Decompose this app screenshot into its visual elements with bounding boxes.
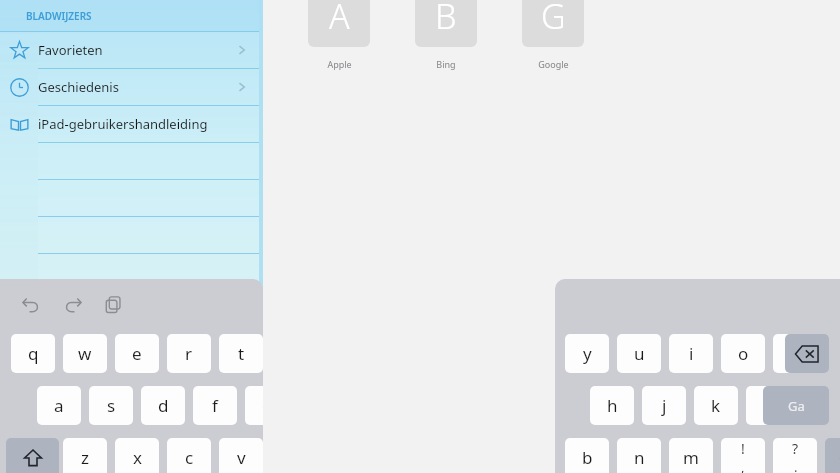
staticText: BLADWIJZERS: [26, 9, 92, 23]
staticText: j: [662, 394, 667, 417]
staticText: q: [28, 342, 39, 365]
button[interactable]: Favorieten: [0, 32, 263, 68]
button[interactable]: iPad-gebruikershandleiding: [0, 106, 263, 142]
staticText: b: [582, 446, 593, 469]
staticText: s: [107, 394, 116, 417]
staticText: z: [81, 446, 89, 469]
button[interactable]: t: [219, 334, 263, 373]
staticText: .: [794, 458, 798, 473]
button[interactable]: u: [617, 334, 661, 373]
staticText: w: [78, 342, 92, 365]
button[interactable]: g: [245, 386, 263, 425]
staticText: y: [583, 342, 592, 365]
staticText: r: [185, 342, 193, 365]
staticText: p: [790, 342, 801, 365]
button[interactable]: Geschiedenis: [0, 69, 263, 105]
staticText: k: [711, 394, 721, 417]
button[interactable]: b: [565, 438, 609, 473]
staticText: Favorieten: [38, 41, 103, 59]
staticText: a: [54, 394, 64, 417]
button[interactable]: j: [642, 386, 686, 425]
button[interactable]: Apple: [294, 56, 384, 72]
button[interactable]: p: [773, 334, 817, 373]
button[interactable]: l: [746, 386, 790, 425]
staticText: ,: [741, 458, 745, 473]
staticText: o: [738, 342, 749, 365]
staticText: u: [634, 342, 645, 365]
staticText: A: [329, 0, 350, 39]
button[interactable]: r: [167, 334, 211, 373]
staticText: d: [158, 394, 169, 417]
button[interactable]: Google: [508, 56, 598, 72]
button[interactable]: m: [669, 438, 713, 473]
button[interactable]: !: [721, 438, 765, 473]
staticText: n: [634, 446, 645, 469]
button[interactable]: c: [167, 438, 211, 473]
button[interactable]: d: [141, 386, 185, 425]
staticText: e: [132, 342, 142, 365]
staticText: i: [689, 342, 694, 365]
staticText: m: [683, 446, 699, 469]
button[interactable]: q: [11, 334, 55, 373]
staticText: v: [237, 446, 246, 469]
button[interactable]: Bing: [401, 56, 491, 72]
staticText: h: [607, 394, 618, 417]
button[interactable]: ?: [773, 438, 817, 473]
staticText: t: [238, 342, 245, 365]
button[interactable]: v: [219, 438, 263, 473]
button[interactable]: Paste: [97, 290, 129, 318]
staticText: Google: [538, 58, 569, 70]
button[interactable]: B: [415, 0, 477, 47]
button[interactable]: x: [115, 438, 159, 473]
staticText: Bing: [436, 58, 456, 70]
button[interactable]: w: [63, 334, 107, 373]
button[interactable]: h: [590, 386, 634, 425]
staticText: !: [741, 439, 745, 458]
button[interactable]: G: [522, 0, 584, 47]
button[interactable]: s: [89, 386, 133, 425]
staticText: f: [212, 394, 218, 417]
button[interactable]: o: [721, 334, 765, 373]
staticText: Ga: [788, 397, 805, 415]
staticText: x: [133, 446, 142, 469]
button[interactable]: f: [193, 386, 237, 425]
button[interactable]: n: [617, 438, 661, 473]
button[interactable]: A: [308, 0, 370, 47]
button[interactable]: e: [115, 334, 159, 373]
button[interactable]: Redo: [57, 290, 89, 318]
staticText: ?: [792, 439, 799, 458]
button[interactable]: i: [669, 334, 713, 373]
staticText: G: [541, 0, 566, 39]
staticText: c: [185, 446, 194, 469]
button[interactable]: z: [63, 438, 107, 473]
staticText: Geschiedenis: [38, 78, 119, 96]
staticText: iPad-gebruikershandleiding: [38, 115, 208, 133]
button[interactable]: Ga: [763, 386, 829, 425]
button[interactable]: k: [694, 386, 738, 425]
button[interactable]: Undo: [14, 290, 46, 318]
button[interactable]: Backspace: [785, 334, 829, 373]
button[interactable]: Shift: [6, 438, 59, 473]
staticText: B: [435, 0, 457, 39]
staticText: Apple: [327, 58, 352, 70]
button[interactable]: a: [37, 386, 81, 425]
button[interactable]: y: [565, 334, 609, 373]
